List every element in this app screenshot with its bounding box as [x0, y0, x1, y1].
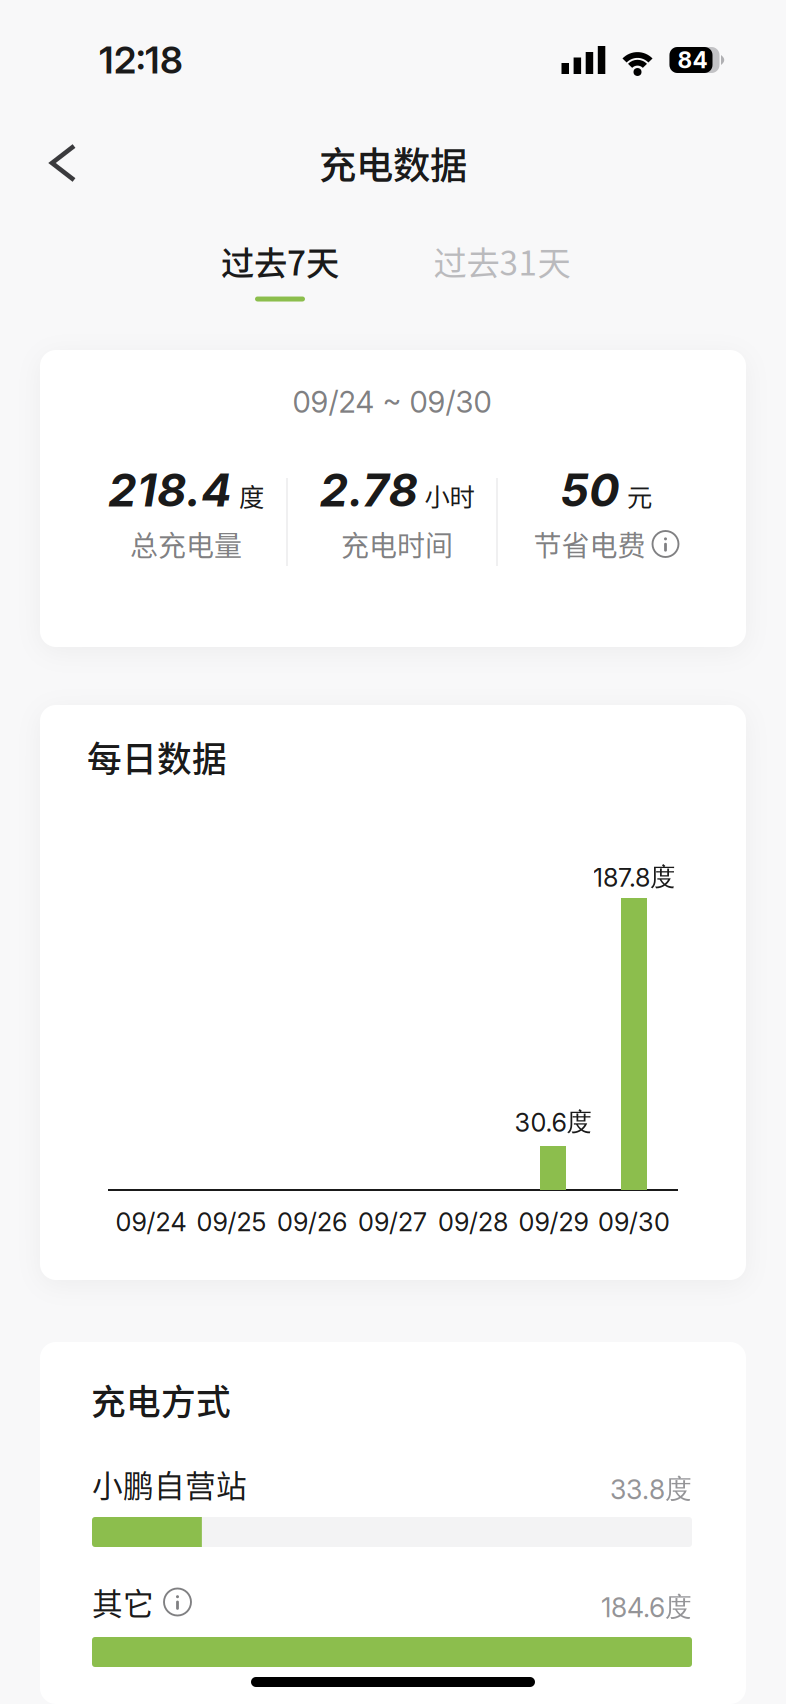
staticText: 12:18 [99, 37, 183, 83]
button[interactable]: 过去31天 [397, 228, 607, 294]
button[interactable] [164, 1588, 191, 1615]
staticText: 09/30 [598, 1207, 670, 1237]
staticText: 09/24 [115, 1207, 186, 1237]
staticText: 30.6度 [514, 1106, 591, 1138]
button[interactable] [0, 120, 104, 206]
staticText: 09/28 [438, 1207, 508, 1237]
staticText: 小时 [424, 477, 474, 514]
staticText: 总充电量 [130, 524, 242, 564]
staticText: 过去7天 [221, 237, 339, 285]
staticText: 充电时间 [341, 524, 453, 564]
staticText: 节省电费 [533, 524, 645, 564]
staticText: 187.8度 [593, 861, 675, 893]
staticText: 09/25 [196, 1207, 266, 1237]
staticText: 每日数据 [87, 732, 227, 782]
staticText: 50 [560, 463, 620, 517]
staticText: 184.6度 [601, 1590, 692, 1624]
staticText: 33.8度 [610, 1472, 692, 1506]
staticText: 09/29 [518, 1207, 588, 1237]
staticText: 84 [677, 46, 707, 74]
staticText: 2.78 [319, 463, 417, 517]
staticText: 过去31天 [433, 237, 570, 285]
staticText: 小鹏自营站 [92, 1462, 247, 1506]
staticText: 充电方式 [91, 1375, 231, 1425]
staticText: 充电数据 [319, 136, 467, 190]
staticText: 218.4 [108, 463, 232, 517]
staticText: 09/26 [277, 1207, 347, 1237]
button[interactable] [652, 531, 678, 557]
staticText: 09/24 ~ 09/30 [292, 384, 491, 420]
staticText: 09/27 [358, 1207, 427, 1237]
staticText: 元 [627, 477, 652, 514]
button[interactable]: 过去7天 [175, 228, 385, 294]
staticText: 度 [239, 477, 264, 514]
staticText: 其它 [92, 1580, 154, 1624]
